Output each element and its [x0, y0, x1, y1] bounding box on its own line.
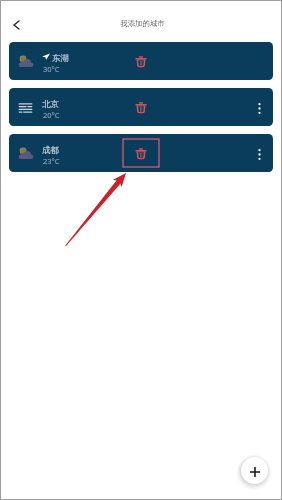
staticText: 23°C: [43, 156, 60, 166]
staticText: 北京: [42, 99, 59, 110]
button[interactable]: 成都: [9, 134, 273, 172]
staticText: 30°C: [43, 64, 60, 74]
button[interactable]: Back: [3, 11, 29, 37]
button[interactable]: 东湖: [9, 42, 273, 80]
staticText: 我添加的城市: [120, 19, 165, 28]
button[interactable]: 北京: [9, 88, 273, 126]
button[interactable]: Add city: [241, 457, 268, 484]
staticText: 20°C: [43, 110, 60, 120]
button[interactable]: Delete: [128, 50, 154, 74]
button[interactable]: Delete: [128, 142, 154, 166]
button[interactable]: Delete: [128, 96, 154, 120]
button[interactable]: More options: [249, 144, 269, 164]
staticText: 东湖: [52, 53, 69, 64]
button[interactable]: More options: [249, 98, 269, 118]
staticText: 成都: [42, 145, 59, 156]
